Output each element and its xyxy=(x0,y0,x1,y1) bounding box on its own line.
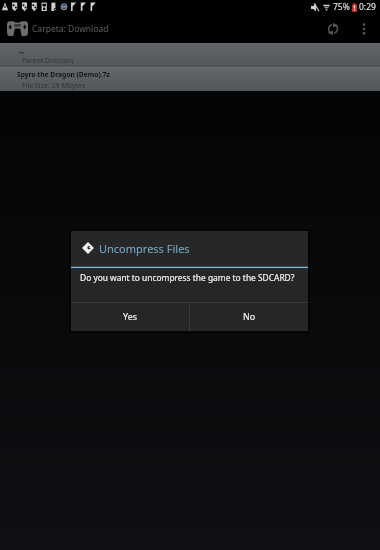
staticText: 0:29 xyxy=(359,1,376,13)
button[interactable]: Refresh xyxy=(317,14,349,43)
staticText: File Size: 29 Mbytes xyxy=(22,81,86,91)
button[interactable]: Parent Directory xyxy=(0,43,380,66)
staticText: Yes xyxy=(123,310,138,322)
staticText: Parent Directory xyxy=(22,56,75,65)
staticText: 75% xyxy=(333,1,350,13)
staticText: Spyro the Dragon (Demo).7z xyxy=(17,70,110,79)
staticText: Uncompress Files xyxy=(99,241,190,256)
button[interactable]: Yes xyxy=(71,303,189,331)
staticText: Do you want to uncompress the game to th… xyxy=(80,272,295,283)
button[interactable]: Spyro the Dragon (Demo).7z xyxy=(0,68,380,91)
staticText: Carpeta: Download xyxy=(32,23,109,35)
staticText: No xyxy=(243,310,256,322)
button[interactable]: No xyxy=(190,303,308,331)
button[interactable]: More options xyxy=(349,14,379,43)
